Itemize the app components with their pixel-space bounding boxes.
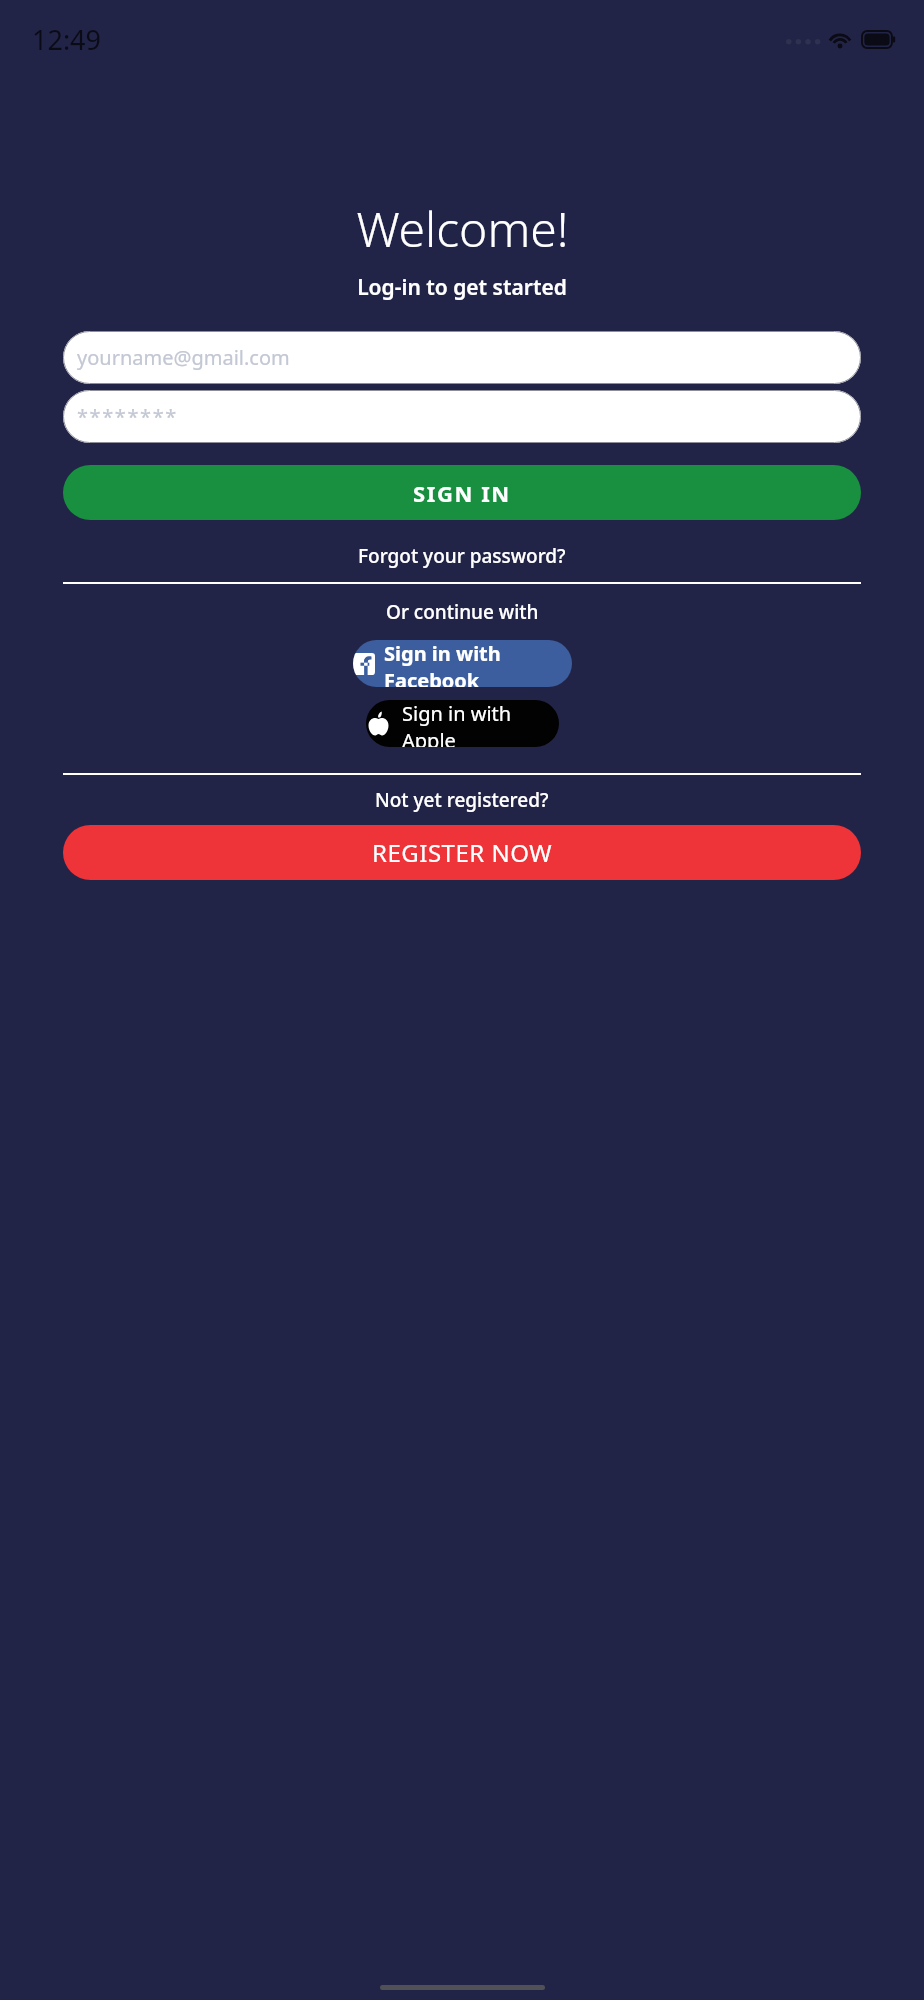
staticText: Sign in with Facebook: [384, 640, 572, 687]
staticText: yourname@gmail.com: [77, 344, 290, 371]
staticText: Sign in with Apple: [402, 700, 559, 747]
button[interactable]: Forgot your password?: [63, 543, 861, 569]
button[interactable]: REGISTER NOW: [63, 825, 861, 880]
button[interactable]: Apple: [366, 700, 559, 747]
other: Apple: [366, 711, 391, 736]
staticText: Or continue with: [386, 599, 539, 625]
staticText: Welcome!: [356, 196, 569, 261]
staticText: Forgot your password?: [358, 543, 566, 569]
other: Facebook: [353, 653, 375, 675]
staticText: REGISTER NOW: [372, 836, 552, 869]
staticText: Log-in to get started: [357, 273, 567, 302]
button[interactable]: Facebook: [353, 640, 572, 687]
staticText: ********: [77, 403, 178, 430]
button[interactable]: yourname@gmail.com: [63, 331, 861, 384]
staticText: Not yet registered?: [375, 787, 549, 813]
staticText: SIGN IN: [413, 478, 511, 508]
staticText: 12:49: [32, 21, 102, 58]
button[interactable]: SIGN IN: [63, 465, 861, 520]
button[interactable]: ********: [63, 390, 861, 443]
